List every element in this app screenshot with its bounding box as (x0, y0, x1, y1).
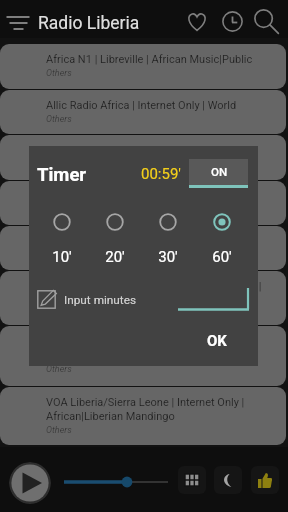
button[interactable]: Volume (58, 474, 174, 490)
button[interactable]: Truth FM 96.1 | Monrovia | African (0, 226, 286, 270)
staticText: OK (207, 332, 227, 350)
staticText: Others (46, 205, 72, 216)
button[interactable]: 20' (93, 205, 137, 255)
staticText: Radio Liberia (38, 13, 140, 34)
staticText: Others (46, 364, 72, 375)
staticText: Timer (37, 164, 87, 186)
button[interactable]: Star Radio | Monrovia | News Talk (0, 181, 286, 225)
staticText: Others (46, 250, 72, 261)
button[interactable]: Navigation menu (0, 0, 38, 38)
staticText: 60' (200, 248, 244, 266)
button[interactable]: Liberia Broadcasting System | Internet O… (0, 271, 286, 325)
staticText: Others (46, 425, 72, 436)
button[interactable]: Radio Veritas Liberia | Monrovia | Catho… (0, 326, 286, 386)
staticText: Allic Radio Africa | Internet Only | Wor… (46, 99, 237, 112)
button[interactable]: VOA Liberia/Sierra Leone | Internet Only… (0, 387, 286, 445)
staticText: Others (46, 68, 72, 79)
button[interactable]: Radio Liberia | Monrovia | Public Radio (0, 135, 286, 180)
button[interactable]: OK (183, 325, 251, 357)
staticText: Others (46, 159, 72, 170)
button[interactable]: Night mode (214, 466, 242, 494)
staticText: VOA Liberia/Sierra Leone | Internet Only… (46, 396, 245, 423)
button[interactable]: 10' (40, 205, 84, 255)
button[interactable]: Edit minutes (37, 290, 56, 309)
button[interactable]: Like (251, 466, 279, 494)
staticText: Others (46, 114, 72, 125)
staticText: 00:59' (141, 165, 181, 183)
staticText: 20' (93, 248, 137, 266)
button[interactable]: Grid view (178, 466, 206, 494)
staticText: Africa N1 | Libreville | African Music|P… (46, 53, 253, 66)
button[interactable]: 60' (200, 205, 244, 255)
staticText: Input minutes (64, 293, 137, 307)
button[interactable]: Minutes input field (178, 288, 249, 311)
staticText: Radio Veritas Liberia | Monrovia | Catho… (46, 335, 255, 362)
staticText: 10' (40, 248, 84, 266)
button[interactable]: Sleep timer (217, 6, 247, 36)
button[interactable]: Play (9, 462, 51, 504)
button[interactable]: Allic Radio Africa | Internet Only | Wor… (0, 90, 286, 134)
staticText: ON (211, 165, 228, 179)
button[interactable]: Africa N1 | Libreville | African Music|P… (0, 44, 286, 89)
button[interactable]: 30' (146, 205, 190, 255)
button[interactable]: Favorites (182, 7, 212, 37)
button[interactable]: ON (189, 159, 248, 188)
staticText: 30' (146, 248, 190, 266)
button[interactable]: Search (250, 5, 282, 37)
staticText: Radio Liberia | Monrovia | Public Radio (46, 144, 233, 157)
staticText: Liberia Broadcasting System | Internet O… (46, 280, 262, 307)
